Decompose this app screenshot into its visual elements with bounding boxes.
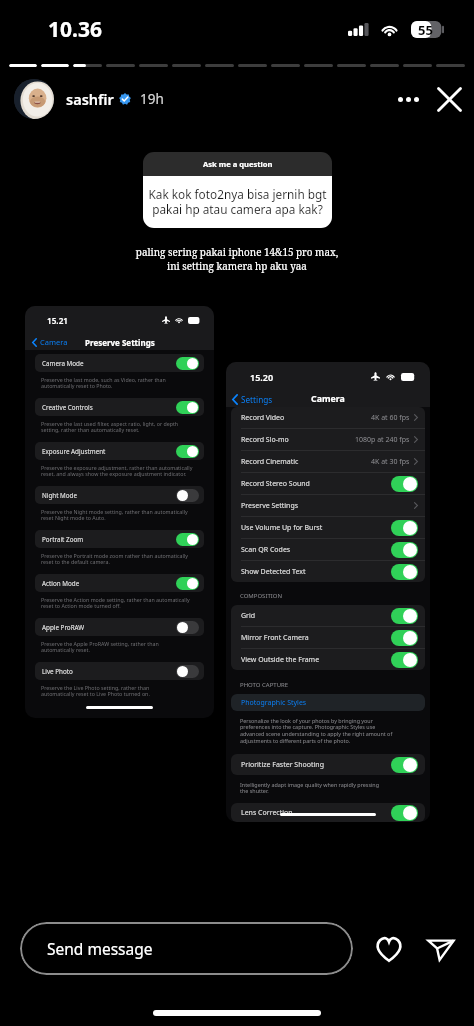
staticText: Preserve the last mode, such as Video, r… [41, 376, 166, 390]
button[interactable]: Mirror Front Camera [231, 627, 425, 648]
button[interactable]: Apple ProRAW [35, 618, 204, 636]
staticText: Record Slo-mo [241, 435, 289, 445]
staticText: Mirror Front Camera [241, 633, 309, 643]
button[interactable]: On [176, 401, 199, 414]
staticText: Preserve the Live Photo setting, rather … [41, 684, 150, 698]
button[interactable]: Share [421, 929, 461, 969]
button[interactable]: Record Video [231, 407, 425, 428]
staticText: Preserve Settings [241, 501, 299, 511]
button[interactable]: Photographic Styles [231, 694, 425, 711]
staticText: Camera Mode [42, 359, 84, 368]
button[interactable]: On [391, 757, 418, 773]
button[interactable]: Use Volume Up for Burst [231, 517, 425, 538]
button[interactable]: Record Slo-mo [231, 429, 425, 450]
staticText: Exposure Adjustment [42, 447, 106, 456]
staticText: Action Mode [42, 579, 80, 588]
staticText: Send message [47, 938, 153, 959]
staticText: 10.36 [48, 15, 102, 44]
button[interactable]: On [391, 608, 418, 624]
button[interactable]: Off [176, 621, 199, 634]
button[interactable]: Camera Mode [35, 354, 204, 372]
staticText: Camera [40, 337, 68, 347]
staticText: Personalize the look of your photos by b… [240, 717, 393, 745]
button[interactable]: Like [369, 929, 409, 969]
button[interactable]: Live Photo [35, 662, 204, 680]
staticText: 4K at 30 fps [371, 457, 410, 467]
staticText: Live Photo [42, 667, 73, 676]
staticText: Record Stereo Sound [241, 479, 310, 489]
staticText: Preserve the exposure adjustment, rather… [41, 464, 193, 478]
staticText: Preserve the Portrait mode zoom rather t… [41, 552, 188, 566]
staticText: 19h [140, 90, 164, 108]
staticText: Apple ProRAW [42, 623, 85, 632]
button[interactable]: Portrait Zoom [35, 530, 204, 548]
button[interactable]: On [176, 577, 199, 590]
staticText: Ask me a question [203, 159, 273, 169]
button[interactable]: Scan QR Codes [231, 539, 425, 560]
button[interactable]: On [176, 533, 199, 546]
staticText: Portrait Zoom [42, 535, 84, 544]
button[interactable]: On [391, 476, 418, 492]
button[interactable]: Lens Correction [231, 803, 425, 822]
button[interactable]: Off [176, 489, 199, 502]
staticText: 55 [418, 21, 433, 38]
button[interactable]: Show Detected Text [231, 561, 425, 582]
staticText: Preserve the Night mode setting, rather … [41, 508, 188, 522]
staticText: Intelligently adapt image quality when r… [240, 781, 380, 795]
button[interactable]: Record Stereo Sound [231, 473, 425, 494]
staticText: Record Cinematic [241, 457, 299, 467]
staticText: 15.21 [47, 315, 68, 326]
button[interactable]: Record Cinematic [231, 451, 425, 472]
staticText: paling sering pakai iphone 14&15 pro max… [0, 245, 474, 273]
button[interactable]: Creative Controls [35, 398, 204, 416]
staticText: Scan QR Codes [241, 545, 291, 555]
button[interactable]: Close [428, 78, 470, 120]
staticText: Prioritize Faster Shooting [241, 760, 324, 770]
button[interactable]: More options [390, 81, 426, 117]
button[interactable]: Off [176, 665, 199, 678]
button[interactable]: On [176, 357, 199, 370]
staticText: 4K at 60 fps [371, 413, 410, 423]
staticText: Camera [311, 393, 345, 405]
staticText: Preserve the last used filter, aspect ra… [41, 420, 179, 434]
staticText: 15.20 [250, 371, 274, 383]
staticText: View Outside the Frame [241, 655, 320, 665]
staticText: Night Mode [42, 491, 78, 500]
button[interactable]: Ask me a question [143, 152, 332, 228]
staticText: Preserve Settings [85, 337, 155, 348]
button[interactable]: Send message [20, 922, 353, 975]
staticText: Show Detected Text [241, 567, 306, 577]
staticText: Record Video [241, 413, 285, 423]
button[interactable]: Grid [231, 605, 425, 626]
staticText: Use Volume Up for Burst [241, 523, 323, 533]
staticText: Preserve the Action mode setting, rather… [41, 596, 190, 610]
staticText: PHOTO CAPTURE [240, 681, 289, 689]
button[interactable]: Profile photo [14, 79, 54, 119]
button[interactable]: View Outside the Frame [231, 649, 425, 670]
staticText: Photographic Styles [241, 698, 307, 708]
button[interactable]: On [391, 630, 418, 646]
button[interactable]: Night Mode [35, 486, 204, 504]
staticText: Preserve the Apple ProRAW setting, rathe… [41, 640, 159, 654]
button[interactable]: Preserve Settings [231, 495, 425, 516]
staticText: Kak kok foto2nya bisa jernih bgt pakai h… [148, 186, 327, 218]
button[interactable]: On [391, 542, 418, 558]
button[interactable]: On [176, 445, 199, 458]
staticText: COMPOSITION [240, 592, 283, 600]
button[interactable]: Action Mode [35, 574, 204, 592]
staticText: Creative Controls [42, 403, 93, 412]
staticText: Lens Correction [241, 808, 293, 818]
button[interactable]: On [391, 520, 418, 536]
button[interactable]: On [391, 652, 418, 668]
button[interactable]: On [391, 564, 418, 580]
button[interactable]: On [391, 805, 418, 821]
staticText: Grid [241, 611, 256, 621]
button[interactable]: Prioritize Faster Shooting [231, 754, 425, 775]
staticText: sashfir [66, 89, 114, 109]
staticText: 1080p at 240 fps [355, 435, 410, 445]
staticText: Settings [241, 394, 273, 405]
button[interactable]: Exposure Adjustment [35, 442, 204, 460]
